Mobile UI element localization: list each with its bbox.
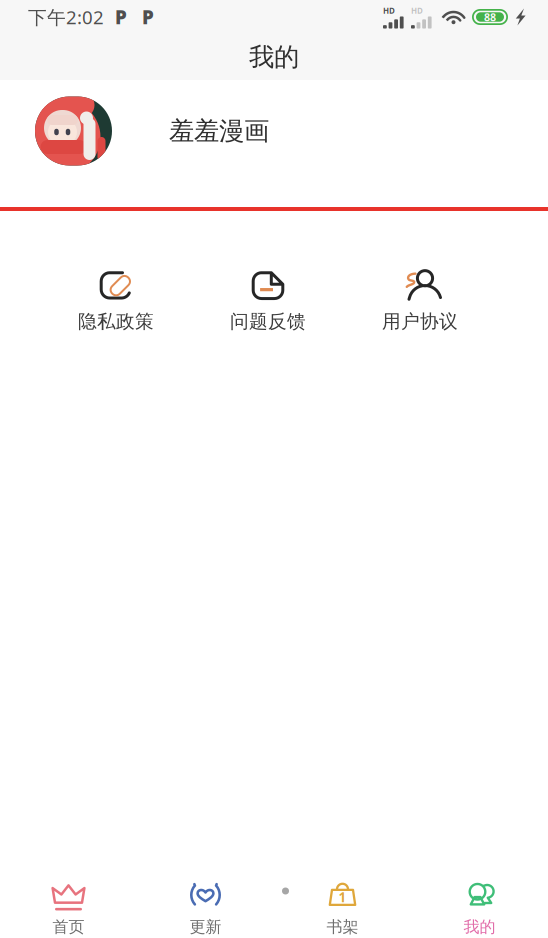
staticText: 羞羞漫画 [169, 115, 269, 146]
button[interactable]: 更新 [137, 880, 274, 936]
staticText: 用户协议 [382, 310, 458, 333]
button[interactable]: 隐私政策 [40, 264, 192, 339]
staticText: 1 [338, 888, 346, 906]
staticText: 问题反馈 [230, 310, 306, 333]
button[interactable]: 首页 [0, 880, 137, 936]
staticText: P [115, 5, 127, 29]
button[interactable]: 1 [274, 880, 411, 936]
staticText: 下午2:02 [28, 5, 104, 29]
button[interactable]: 羞羞漫画 [0, 80, 548, 207]
button[interactable]: 用户协议 [344, 264, 496, 339]
staticText: 书架 [326, 917, 358, 937]
staticText: 首页 [52, 917, 84, 937]
staticText: 隐私政策 [78, 310, 154, 333]
staticText: 更新 [189, 917, 221, 937]
button[interactable]: 问题反馈 [192, 264, 344, 339]
staticText: P [142, 5, 154, 29]
button[interactable]: 我的 [411, 880, 548, 936]
staticText: HD [383, 5, 395, 16]
staticText: 我的 [463, 917, 495, 937]
staticText: 88 [484, 10, 496, 24]
staticText: HD [411, 5, 423, 16]
staticText: 我的 [249, 41, 299, 72]
